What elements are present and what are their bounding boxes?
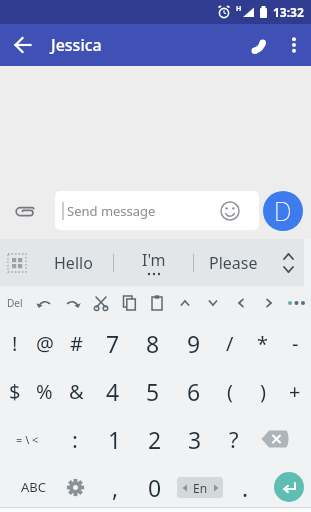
button[interactable]: Hello xyxy=(34,239,113,286)
staticText: 8 xyxy=(146,328,160,359)
staticText: ? xyxy=(229,424,239,454)
button[interactable] xyxy=(87,286,115,319)
button[interactable]: En xyxy=(176,463,224,511)
staticText: D xyxy=(274,194,292,228)
button[interactable] xyxy=(29,286,58,319)
button[interactable] xyxy=(54,463,96,511)
staticText: 3 xyxy=(188,424,202,455)
button[interactable]: . xyxy=(224,463,267,511)
button[interactable]: 5 xyxy=(132,367,174,415)
button[interactable] xyxy=(219,200,241,222)
button[interactable] xyxy=(58,286,87,319)
button[interactable]: / xyxy=(213,319,247,367)
button[interactable] xyxy=(199,286,227,319)
staticText: ( xyxy=(227,378,233,405)
staticText: 0 xyxy=(148,472,162,503)
staticText: 6 xyxy=(187,376,201,407)
button[interactable]: ABC xyxy=(12,463,54,511)
staticText: @ xyxy=(36,330,54,357)
staticText: H xyxy=(236,4,242,14)
button[interactable] xyxy=(277,24,311,66)
button[interactable] xyxy=(12,198,38,224)
staticText: # xyxy=(70,330,83,357)
button[interactable] xyxy=(253,415,296,463)
staticText: I'm xyxy=(142,249,166,271)
staticText: - xyxy=(292,330,299,357)
button[interactable]: # xyxy=(60,319,93,367)
staticText: Del xyxy=(7,296,23,310)
button[interactable] xyxy=(115,286,143,319)
button[interactable]: ( xyxy=(213,367,247,415)
button[interactable]: % xyxy=(29,367,60,415)
staticText: 7 xyxy=(106,328,120,359)
button[interactable] xyxy=(143,286,171,319)
button[interactable]: 1 xyxy=(95,415,134,463)
staticText: 4 xyxy=(106,376,120,407)
button[interactable]: = \ < xyxy=(0,415,54,463)
staticText: 2 xyxy=(148,424,162,455)
button[interactable]: ? xyxy=(214,415,253,463)
button[interactable]: - xyxy=(279,319,311,367)
staticText: = \ < xyxy=(16,432,39,447)
button[interactable] xyxy=(227,286,255,319)
staticText: & xyxy=(69,378,84,405)
staticText: $ xyxy=(9,378,21,405)
staticText: % xyxy=(36,378,53,405)
staticText: ABC xyxy=(21,478,46,496)
button[interactable]: 8 xyxy=(132,319,174,367)
button[interactable]: 2 xyxy=(134,415,175,463)
staticText: Send message xyxy=(67,202,156,220)
staticText: ! xyxy=(12,330,18,357)
staticText: , xyxy=(112,472,119,503)
button[interactable]: & xyxy=(60,367,93,415)
button[interactable]: 4 xyxy=(93,367,132,415)
staticText: + xyxy=(289,378,301,405)
button[interactable] xyxy=(171,286,199,319)
button[interactable] xyxy=(273,239,304,286)
button[interactable]: $ xyxy=(0,367,29,415)
staticText: 1 xyxy=(108,424,122,455)
button[interactable]: 9 xyxy=(174,319,213,367)
staticText: En xyxy=(193,480,208,496)
button[interactable]: @ xyxy=(29,319,60,367)
button[interactable]: Del xyxy=(0,286,29,319)
staticText: : xyxy=(72,424,78,454)
staticText: * xyxy=(257,330,269,357)
button[interactable]: Send message xyxy=(55,191,259,230)
staticText: 5 xyxy=(146,376,160,407)
button[interactable] xyxy=(0,24,46,66)
button[interactable]: 3 xyxy=(175,415,214,463)
button[interactable] xyxy=(267,463,311,511)
button[interactable]: 7 xyxy=(93,319,132,367)
button[interactable]: 6 xyxy=(174,367,213,415)
button[interactable]: D xyxy=(263,191,303,231)
button[interactable]: , xyxy=(96,463,134,511)
button[interactable]: ! xyxy=(0,319,29,367)
button[interactable]: + xyxy=(279,367,311,415)
staticText: ) xyxy=(260,378,266,405)
staticText: 13:32 xyxy=(273,4,304,20)
button[interactable] xyxy=(283,286,311,319)
button[interactable] xyxy=(0,239,34,286)
staticText: 9 xyxy=(187,328,201,359)
button[interactable]: 0 xyxy=(134,463,176,511)
staticText: Please xyxy=(209,252,258,274)
staticText: Hello xyxy=(54,252,93,274)
button[interactable]: ) xyxy=(247,367,279,415)
button[interactable]: * xyxy=(247,319,279,367)
button[interactable]: I'm xyxy=(114,239,193,286)
button[interactable]: Please xyxy=(194,239,273,286)
button[interactable]: : xyxy=(54,415,95,463)
staticText: . xyxy=(242,472,249,503)
staticText: / xyxy=(226,330,234,357)
staticText: Jessica xyxy=(51,34,102,56)
button[interactable] xyxy=(237,24,277,66)
button[interactable] xyxy=(255,286,283,319)
